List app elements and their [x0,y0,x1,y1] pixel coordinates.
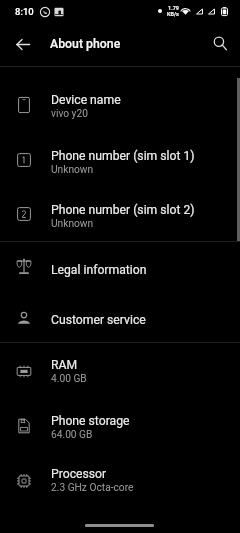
staticText: Unknown [51,218,94,230]
button[interactable]: Processor [0,453,240,508]
staticText: Device name [51,93,121,107]
button[interactable]: Back [3,24,43,64]
button[interactable]: Customer service [0,292,240,342]
staticText: 64.00 GB [51,429,93,441]
staticText: Phone storage [51,414,130,428]
staticText: Processor [51,467,107,481]
button[interactable]: Legal information [0,242,240,292]
button[interactable]: Phone number (sim slot 2) [0,187,240,241]
staticText: About phone [50,37,121,51]
staticText: vivo y20 [51,108,88,120]
staticText: Phone number (sim slot 2) [51,203,195,217]
staticText: Unknown [51,164,94,176]
staticText: RAM [51,358,78,372]
staticText: Customer service [51,313,146,327]
staticText: 4.00 GB [51,373,87,385]
button[interactable]: Search [200,24,240,64]
staticText: KB/s [167,11,179,17]
staticText: 1.79 [168,5,179,11]
button[interactable]: Phone number (sim slot 1) [0,133,240,187]
button[interactable]: Phone storage [0,398,240,453]
button[interactable]: RAM [0,343,240,398]
staticText: Phone number (sim slot 1) [51,149,195,163]
staticText: Legal information [51,263,147,277]
button[interactable]: Device name [0,79,240,133]
staticText: 2.3 GHz Octa-core [51,482,134,494]
staticText: 8:10 [15,6,34,17]
